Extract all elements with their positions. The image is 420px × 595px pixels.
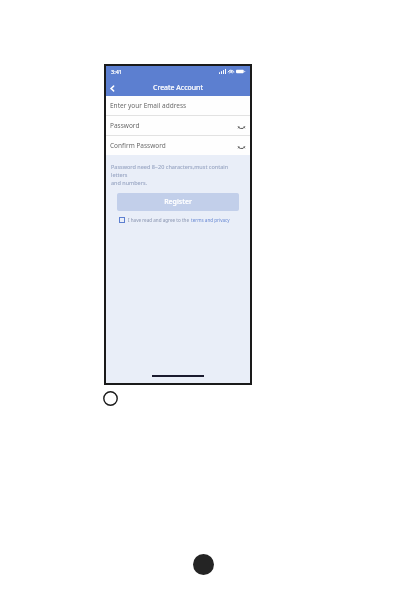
staticText: Password bbox=[110, 121, 140, 130]
staticText: 3:41 bbox=[111, 68, 122, 75]
button[interactable]: Agree checkbox bbox=[119, 217, 237, 223]
button[interactable]: Back bbox=[104, 80, 120, 96]
button[interactable]: Password bbox=[104, 116, 252, 135]
button[interactable]: terms and privacy bbox=[191, 217, 230, 223]
staticText: Register bbox=[164, 197, 192, 207]
staticText: Create Account bbox=[153, 83, 203, 93]
staticText: I have read and agree to the bbox=[128, 217, 191, 223]
staticText: Confirm Password bbox=[110, 141, 166, 150]
button[interactable]: Enter your Email address bbox=[104, 96, 252, 115]
staticText: Enter your Email address bbox=[110, 101, 187, 110]
button[interactable]: Confirm Password bbox=[104, 136, 252, 155]
button[interactable]: Show password bbox=[236, 121, 246, 131]
staticText: Password need 8~20 characters,must conta… bbox=[111, 163, 245, 179]
staticText: and numbers. bbox=[111, 179, 148, 186]
other: Agree checkbox bbox=[119, 217, 125, 223]
button[interactable]: Register bbox=[117, 193, 239, 211]
button[interactable]: Show password bbox=[236, 141, 246, 151]
